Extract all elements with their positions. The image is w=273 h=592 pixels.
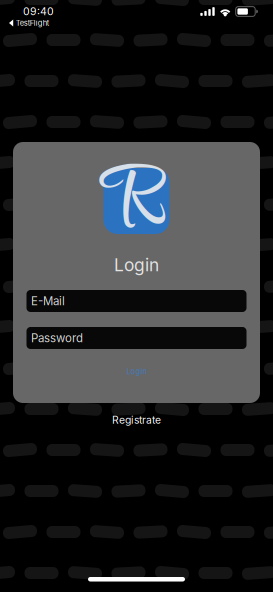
staticText: R [107, 140, 166, 266]
button[interactable]: Registrate [91, 412, 181, 428]
staticText: 09:40 [23, 5, 54, 18]
staticText: TestFlight [16, 18, 49, 28]
staticText: Login [126, 367, 146, 376]
button[interactable]: Login [111, 363, 161, 380]
staticText: Password [31, 331, 83, 345]
staticText: Login [114, 254, 159, 275]
staticText: Registrate [112, 414, 161, 426]
button[interactable]: Back to TestFlight [0, 18, 273, 28]
staticText: E-Mail [31, 294, 65, 308]
